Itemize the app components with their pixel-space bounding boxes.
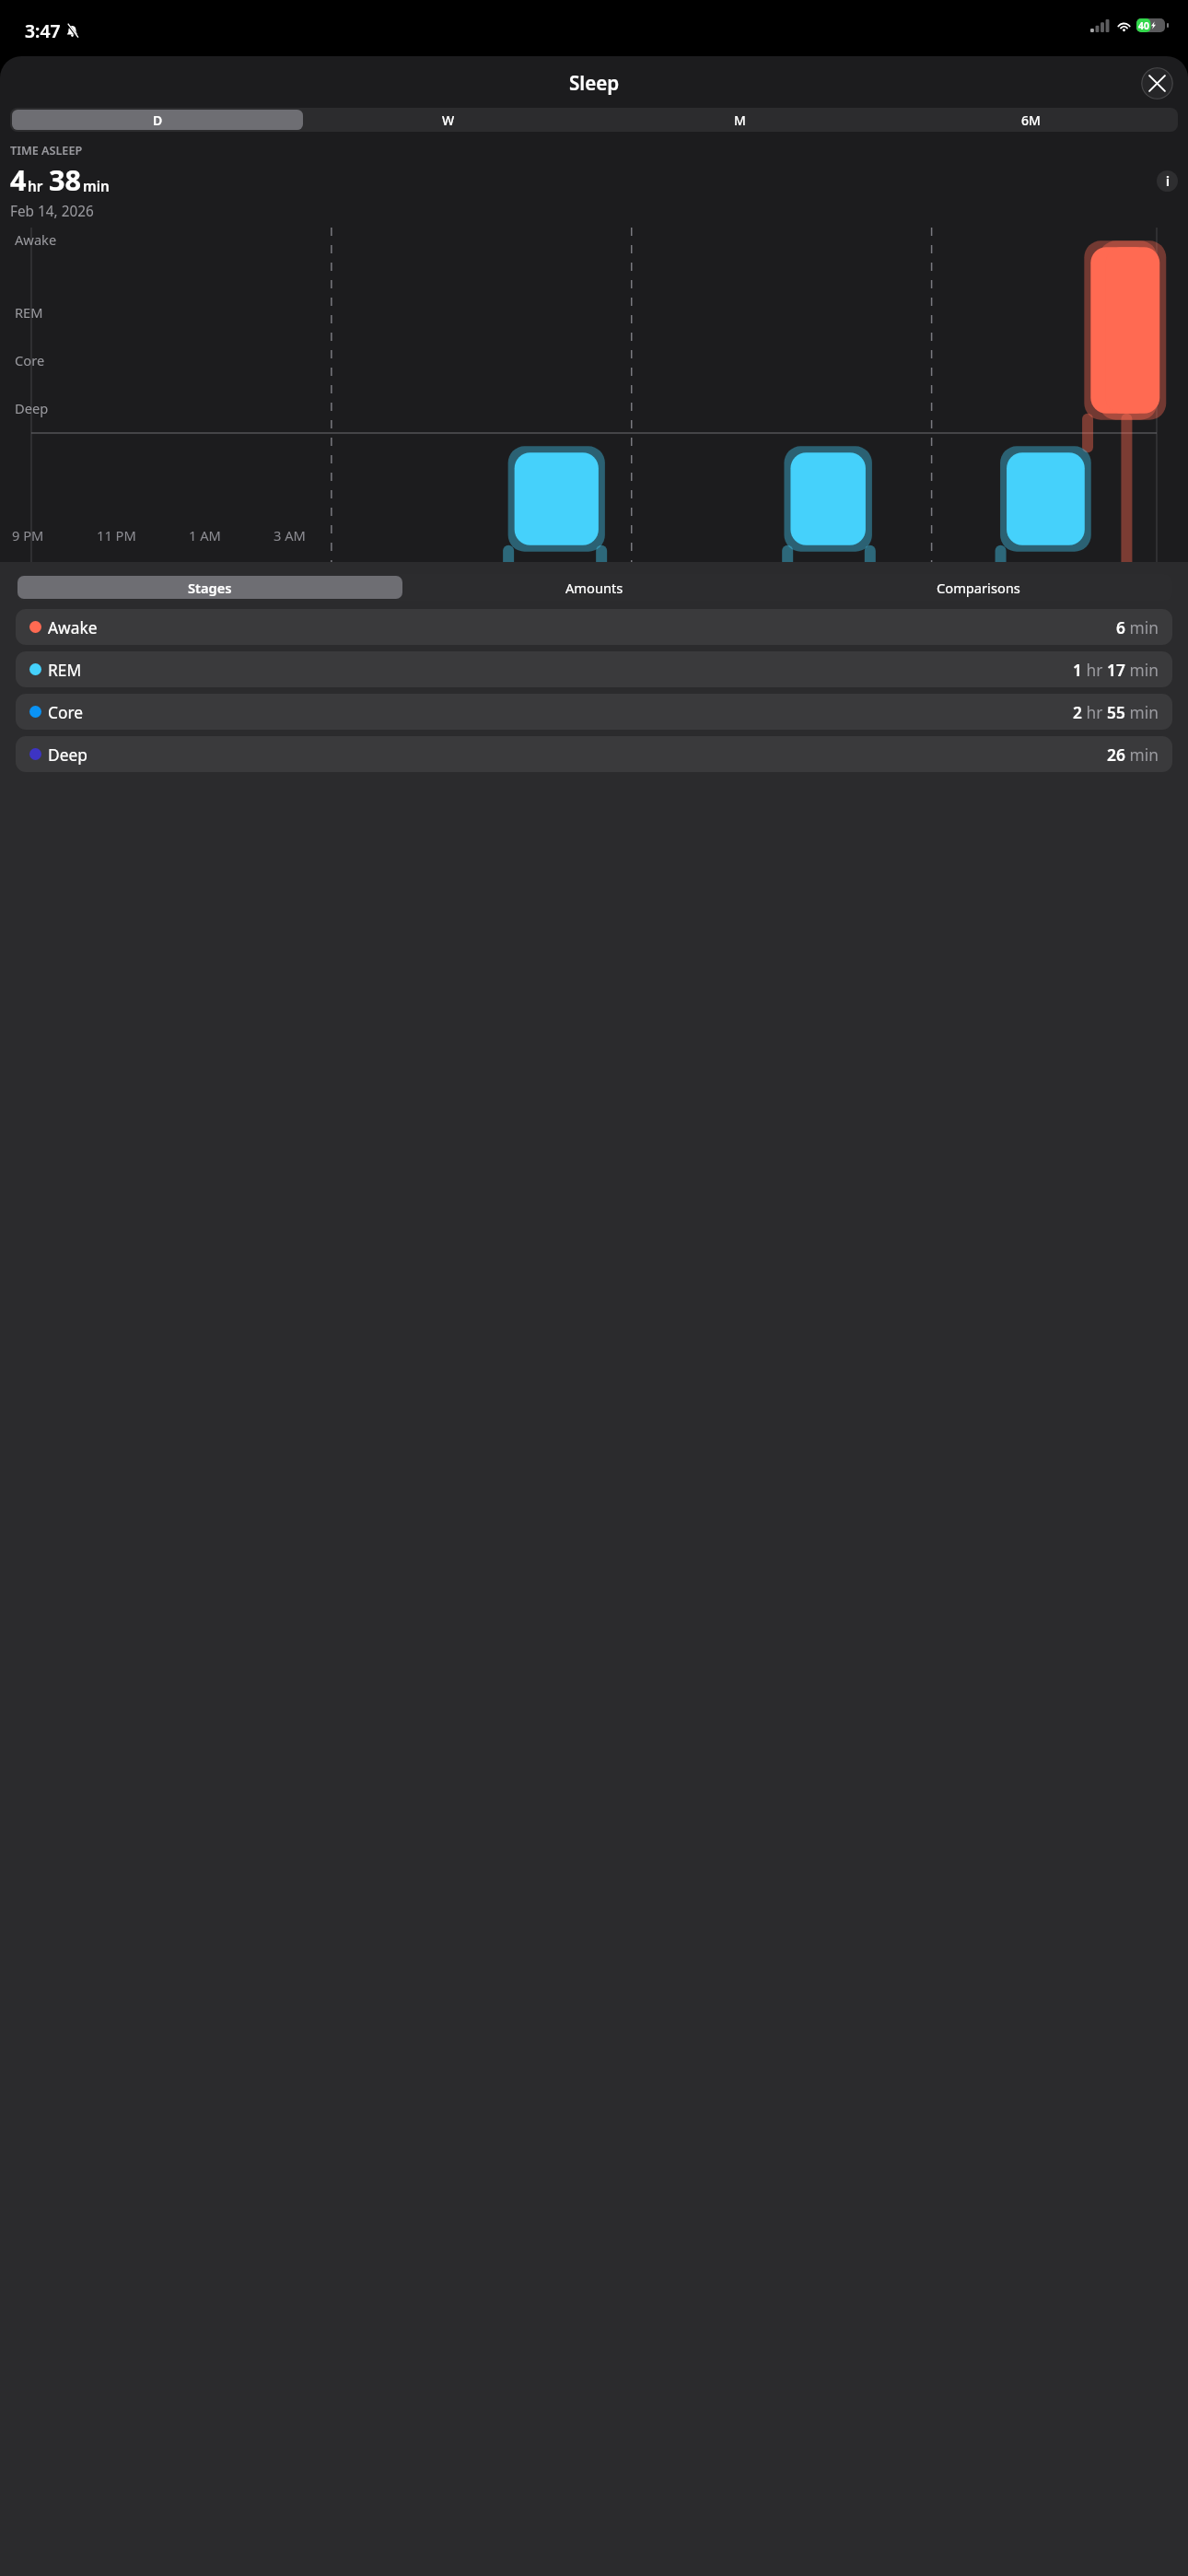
- staticText: 40: [1138, 19, 1149, 32]
- button[interactable]: Deep: [16, 736, 1172, 772]
- staticText: 1 AM: [189, 526, 221, 544]
- staticText: M: [734, 111, 746, 129]
- staticText: hr: [1082, 659, 1107, 681]
- staticText: i: [1166, 173, 1170, 190]
- staticText: hr: [1082, 701, 1107, 723]
- staticText: Amounts: [565, 579, 623, 597]
- staticText: Core: [48, 701, 84, 723]
- staticText: REM: [15, 303, 43, 322]
- button[interactable]: W: [303, 110, 594, 130]
- staticText: REM: [48, 659, 82, 681]
- staticText: 55: [1107, 701, 1125, 723]
- staticText: Stages: [188, 579, 232, 597]
- staticText: 3 AM: [274, 526, 306, 544]
- staticText: 9 PM: [12, 526, 44, 544]
- staticText: 17: [1107, 659, 1125, 681]
- staticText: 1: [1073, 659, 1082, 681]
- button[interactable]: M: [594, 110, 885, 130]
- button[interactable]: Stages: [17, 576, 402, 599]
- button[interactable]: Close: [1141, 67, 1173, 100]
- button[interactable]: Amounts: [402, 576, 786, 599]
- staticText: 3:47: [25, 18, 61, 42]
- staticText: 26: [1107, 744, 1125, 766]
- staticText: W: [442, 111, 455, 129]
- button[interactable]: 6M: [885, 110, 1176, 130]
- button[interactable]: Comparisons: [786, 576, 1171, 599]
- staticText: Core: [15, 351, 45, 369]
- staticText: 6: [1116, 616, 1125, 638]
- staticText: 4: [10, 160, 27, 199]
- button[interactable]: Core: [16, 694, 1172, 730]
- staticText: 2: [1073, 701, 1082, 723]
- staticText: 11 PM: [97, 526, 136, 544]
- button[interactable]: REM: [16, 651, 1172, 687]
- staticText: Deep: [48, 744, 87, 766]
- staticText: hr: [28, 177, 43, 196]
- button[interactable]: Awake: [16, 609, 1172, 645]
- staticText: 6M: [1021, 111, 1041, 129]
- staticText: min: [1125, 701, 1159, 723]
- staticText: Comparisons: [937, 579, 1020, 597]
- staticText: D: [153, 111, 163, 129]
- staticText: 38: [49, 160, 82, 199]
- staticText: min: [1125, 744, 1159, 766]
- button[interactable]: Info: [1157, 170, 1178, 192]
- staticText: Feb 14, 2026: [10, 202, 94, 221]
- staticText: Awake: [15, 230, 57, 249]
- staticText: min: [1125, 616, 1159, 638]
- staticText: min: [1125, 659, 1159, 681]
- staticText: Sleep: [569, 70, 620, 96]
- staticText: Deep: [15, 399, 49, 417]
- staticText: Awake: [48, 616, 98, 638]
- button[interactable]: D: [12, 110, 303, 130]
- staticText: TIME ASLEEP: [10, 142, 83, 158]
- staticText: min: [83, 177, 110, 196]
